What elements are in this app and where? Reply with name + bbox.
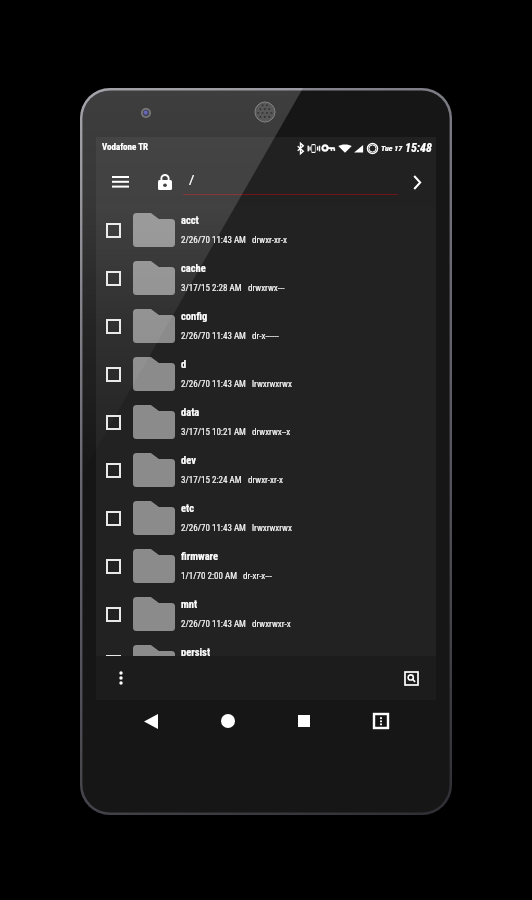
staticText: Tue 17: [381, 144, 403, 153]
staticText: 2/26/70 11:43 AM: [181, 619, 246, 630]
button[interactable]: Home: [207, 700, 249, 742]
staticText: lrwxrwxrwx: [252, 379, 292, 390]
staticText: mnt: [181, 598, 198, 610]
staticText: drwxrwx--x: [252, 427, 291, 438]
staticText: etc: [181, 502, 195, 514]
button[interactable]: etc: [96, 494, 436, 542]
button[interactable]: firmware: [96, 542, 436, 590]
button[interactable]: config: [96, 302, 436, 350]
staticText: 2/26/70 11:43 AM: [181, 379, 246, 390]
staticText: Vodafone TR: [102, 142, 149, 153]
button[interactable]: persist: [96, 638, 436, 686]
staticText: 3/17/15 2:24 AM: [181, 475, 242, 486]
button[interactable]: acct: [96, 206, 436, 254]
button[interactable]: mnt: [96, 590, 436, 638]
button[interactable]: More options: [110, 667, 132, 689]
staticText: dev: [181, 454, 196, 466]
staticText: 2/26/70 11:43 AM: [181, 331, 246, 342]
button[interactable]: cache: [96, 254, 436, 302]
staticText: dr-xr-x---: [243, 571, 273, 582]
button[interactable]: data: [96, 398, 436, 446]
staticText: drwxrwxr-x: [252, 619, 291, 630]
staticText: 3/17/15 10:21 AM: [181, 427, 246, 438]
staticText: 15:48: [405, 141, 432, 155]
staticText: persist: [181, 646, 211, 658]
staticText: 2/26/70 11:43 AM: [181, 235, 246, 246]
staticText: cache: [181, 262, 206, 274]
button[interactable]: Search: [400, 667, 422, 689]
staticText: 2/26/70 11:43 AM: [181, 523, 246, 534]
staticText: d: [181, 358, 187, 370]
button[interactable]: Lock: [147, 164, 183, 200]
staticText: drwxr-xr-x: [252, 235, 287, 246]
button[interactable]: /: [183, 158, 400, 206]
staticText: config: [181, 310, 208, 322]
staticText: acct: [181, 214, 199, 226]
staticText: 1/1/70 2:00 AM: [181, 571, 237, 582]
staticText: firmware: [181, 550, 218, 562]
button[interactable]: d: [96, 350, 436, 398]
button[interactable]: Recents: [283, 700, 325, 742]
staticText: drwxr-xr-x: [248, 475, 283, 486]
staticText: /: [189, 172, 195, 187]
staticText: 3/17/15 2:28 AM: [181, 283, 242, 294]
button[interactable]: Forward: [400, 165, 434, 199]
staticText: drwxrwx---: [248, 283, 285, 294]
staticText: dr-x------: [252, 331, 279, 342]
button[interactable]: dev: [96, 446, 436, 494]
button[interactable]: Menu: [360, 700, 402, 742]
staticText: lrwxrwxrwx: [252, 523, 292, 534]
button[interactable]: Menu: [102, 164, 138, 200]
staticText: data: [181, 406, 200, 418]
button[interactable]: Back: [130, 700, 172, 742]
